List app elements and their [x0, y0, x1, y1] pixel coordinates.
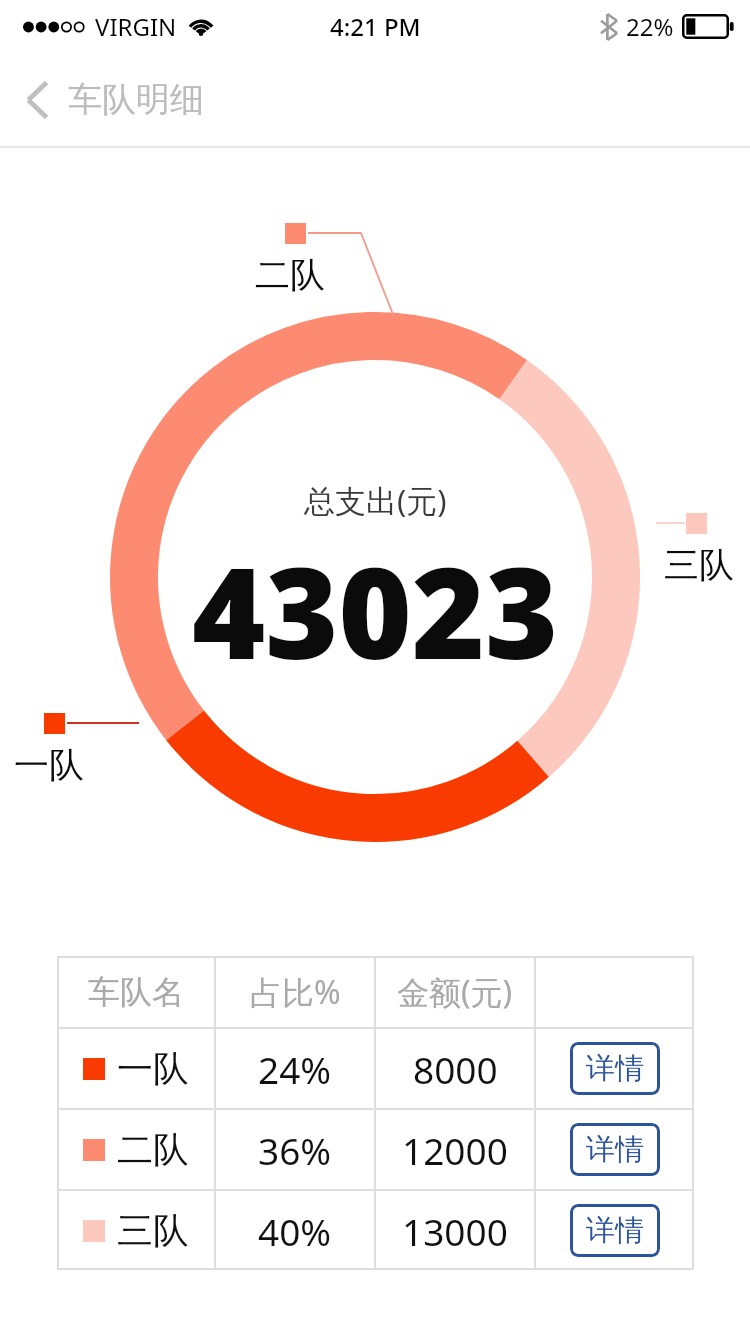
staticText: 金额(元): [397, 970, 513, 1014]
staticText: 24%: [258, 1044, 332, 1094]
staticText: 43023: [192, 525, 559, 695]
staticText: 一队: [14, 743, 84, 787]
staticText: 总支出(元): [304, 479, 447, 521]
staticText: 8000: [413, 1044, 498, 1094]
staticText: 二队: [117, 1127, 189, 1172]
staticText: 40%: [258, 1206, 332, 1256]
staticText: 36%: [258, 1125, 332, 1175]
staticText: 二队: [255, 253, 325, 297]
staticText: 一队: [117, 1046, 189, 1091]
staticText: 三队: [664, 543, 734, 587]
staticText: 13000: [402, 1206, 508, 1256]
staticText: 三队: [117, 1208, 189, 1253]
staticText: 详情: [586, 1212, 644, 1249]
staticText: 车队名: [88, 972, 184, 1012]
button[interactable]: 详情: [570, 1204, 660, 1257]
button[interactable]: 详情: [570, 1042, 660, 1095]
staticText: VIRGIN: [95, 10, 177, 43]
button[interactable]: Back: [0, 62, 230, 137]
button[interactable]: 详情: [570, 1123, 660, 1176]
staticText: 详情: [586, 1131, 644, 1168]
staticText: 占比%: [250, 970, 341, 1014]
staticText: 12000: [402, 1125, 508, 1175]
staticText: 车队明细: [68, 78, 204, 121]
staticText: 详情: [586, 1050, 644, 1087]
staticText: 22%: [626, 10, 674, 43]
staticText: 4:21 PM: [330, 10, 421, 43]
